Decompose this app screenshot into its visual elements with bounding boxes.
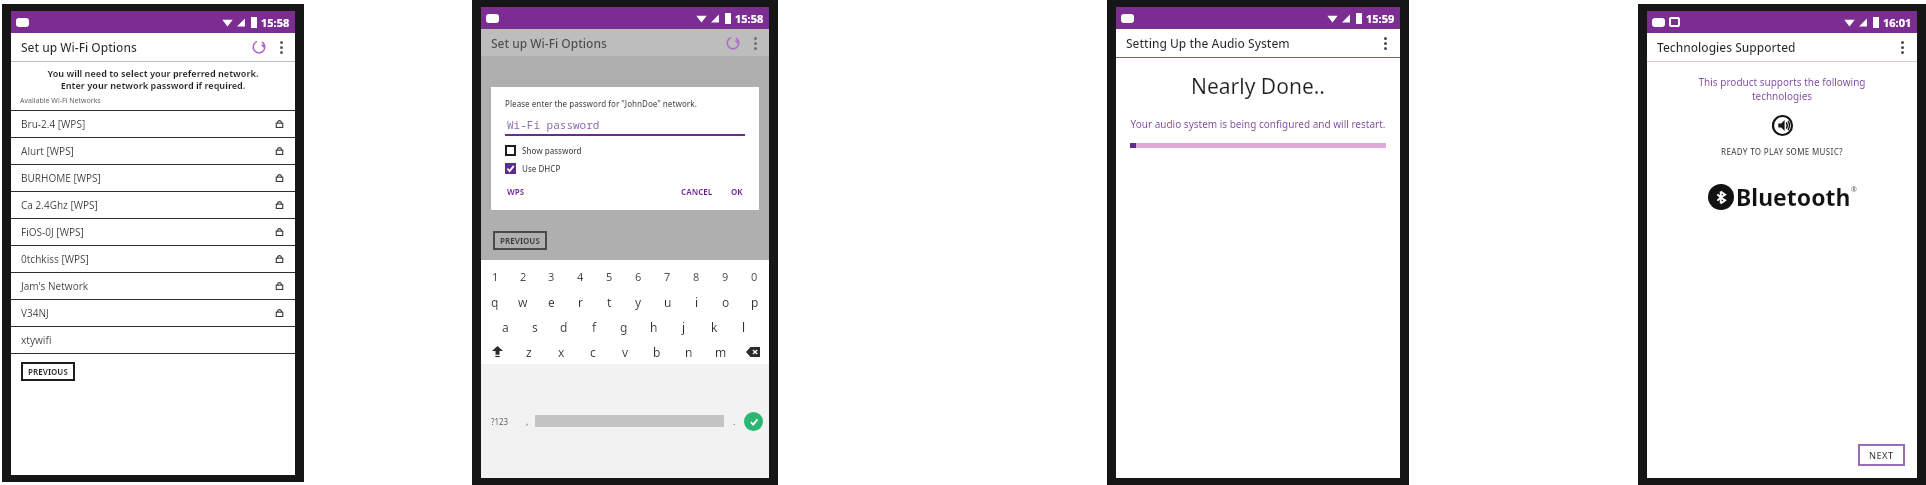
button[interactable]: v [609, 339, 641, 364]
staticText: Technologies Supported [1657, 39, 1796, 55]
button[interactable]: NEXT [1858, 444, 1905, 466]
button[interactable]: BURHOME [WPS] [11, 164, 295, 191]
staticText: i [695, 294, 699, 310]
button[interactable]: p [740, 289, 769, 314]
staticText: t [607, 294, 612, 310]
button[interactable]: 1 [481, 264, 509, 289]
staticText: PREVIOUS [28, 366, 68, 377]
button[interactable]: u [653, 289, 682, 314]
button[interactable]: Bru-2.4 [WPS] [11, 110, 295, 137]
button[interactable]: Refresh [248, 36, 270, 58]
button[interactable]: CANCEL [679, 184, 715, 199]
button[interactable]: h [639, 314, 669, 339]
button[interactable]: w [509, 289, 537, 314]
staticText: 0tchkiss [WPS] [21, 252, 89, 266]
staticText: 15:58 [735, 11, 764, 26]
staticText: 15:58 [261, 15, 290, 30]
button[interactable]: m [705, 339, 737, 364]
button[interactable]: More options [1891, 36, 1913, 58]
button[interactable]: 2 [509, 264, 537, 289]
staticText: Set up Wi-Fi Options [21, 39, 137, 55]
button[interactable]: j [669, 314, 699, 339]
staticText: u [664, 294, 672, 310]
staticText: y [635, 294, 642, 310]
button[interactable]: V34NJ [11, 299, 295, 326]
staticText: , [526, 415, 529, 427]
button[interactable]: Backspace [737, 339, 769, 364]
button[interactable]: 5 [595, 264, 624, 289]
staticText: l [742, 319, 746, 335]
staticText: 2 [520, 269, 527, 284]
button[interactable]: 0 [740, 264, 769, 289]
staticText: a [502, 319, 509, 335]
button[interactable]: i [682, 289, 711, 314]
button[interactable]: 6 [624, 264, 653, 289]
staticText: PREVIOUS [500, 235, 540, 246]
button[interactable]: More options [1374, 32, 1396, 54]
staticText: b [653, 344, 661, 360]
staticText: CANCEL [681, 186, 713, 197]
staticText: 3 [548, 269, 555, 284]
staticText: v [622, 344, 629, 360]
button[interactable]: z [513, 339, 545, 364]
button[interactable]: OK [729, 184, 745, 199]
button[interactable]: b [641, 339, 673, 364]
staticText: m [715, 344, 727, 360]
button[interactable]: c [577, 339, 609, 364]
button[interactable]: a [491, 314, 520, 339]
button[interactable]: Use DHCP [505, 163, 561, 174]
button[interactable]: ?123 [481, 364, 519, 478]
button[interactable]: Shift [481, 339, 513, 364]
staticText: n [685, 344, 693, 360]
staticText: j [682, 319, 686, 335]
button[interactable]: xtywifi [11, 326, 295, 353]
button[interactable]: WPS [505, 184, 527, 199]
button[interactable]: o [711, 289, 740, 314]
button[interactable]: 8 [682, 264, 711, 289]
button[interactable]: f [579, 314, 609, 339]
button[interactable]: e [537, 289, 566, 314]
button[interactable]: Ca 2.4Ghz [WPS] [11, 191, 295, 218]
button[interactable]: 3 [537, 264, 566, 289]
button[interactable]: k [699, 314, 729, 339]
button[interactable]: 7 [653, 264, 682, 289]
button[interactable]: 4 [566, 264, 595, 289]
staticText: 5 [606, 269, 613, 284]
button[interactable]: FiOS-0J [WPS] [11, 218, 295, 245]
staticText: Bru-2.4 [WPS] [21, 117, 86, 131]
staticText: 6 [635, 269, 642, 284]
staticText: OK [731, 186, 743, 197]
button[interactable]: x [545, 339, 577, 364]
staticText: o [722, 294, 730, 310]
button[interactable]: Alurt [WPS] [11, 137, 295, 164]
button[interactable]: r [566, 289, 595, 314]
button[interactable]: l [729, 314, 759, 339]
button[interactable]: Refresh [722, 32, 744, 54]
button[interactable]: Jam's Network [11, 272, 295, 299]
staticText: 16:01 [1883, 15, 1912, 30]
staticText: ?123 [491, 416, 509, 427]
button[interactable]: 9 [711, 264, 740, 289]
button[interactable]: PREVIOUS [21, 362, 75, 381]
staticText: q [491, 294, 499, 310]
button[interactable]: PREVIOUS [493, 231, 547, 250]
staticText: Show password [522, 145, 582, 156]
button[interactable]: Enter [744, 412, 763, 431]
button[interactable]: 0tchkiss [WPS] [11, 245, 295, 272]
button[interactable]: n [673, 339, 705, 364]
button[interactable]: t [595, 289, 624, 314]
button[interactable]: q [481, 289, 509, 314]
button[interactable]: More options [744, 32, 766, 54]
button[interactable]: More options [270, 36, 292, 58]
staticText: z [526, 344, 532, 360]
button[interactable]: s [520, 314, 549, 339]
button[interactable]: d [549, 314, 579, 339]
button[interactable]: g [609, 314, 639, 339]
button[interactable]: Show password [505, 145, 582, 156]
button[interactable]: y [624, 289, 653, 314]
staticText: Your audio system is being configured an… [1128, 117, 1388, 131]
staticText: f [592, 319, 597, 335]
